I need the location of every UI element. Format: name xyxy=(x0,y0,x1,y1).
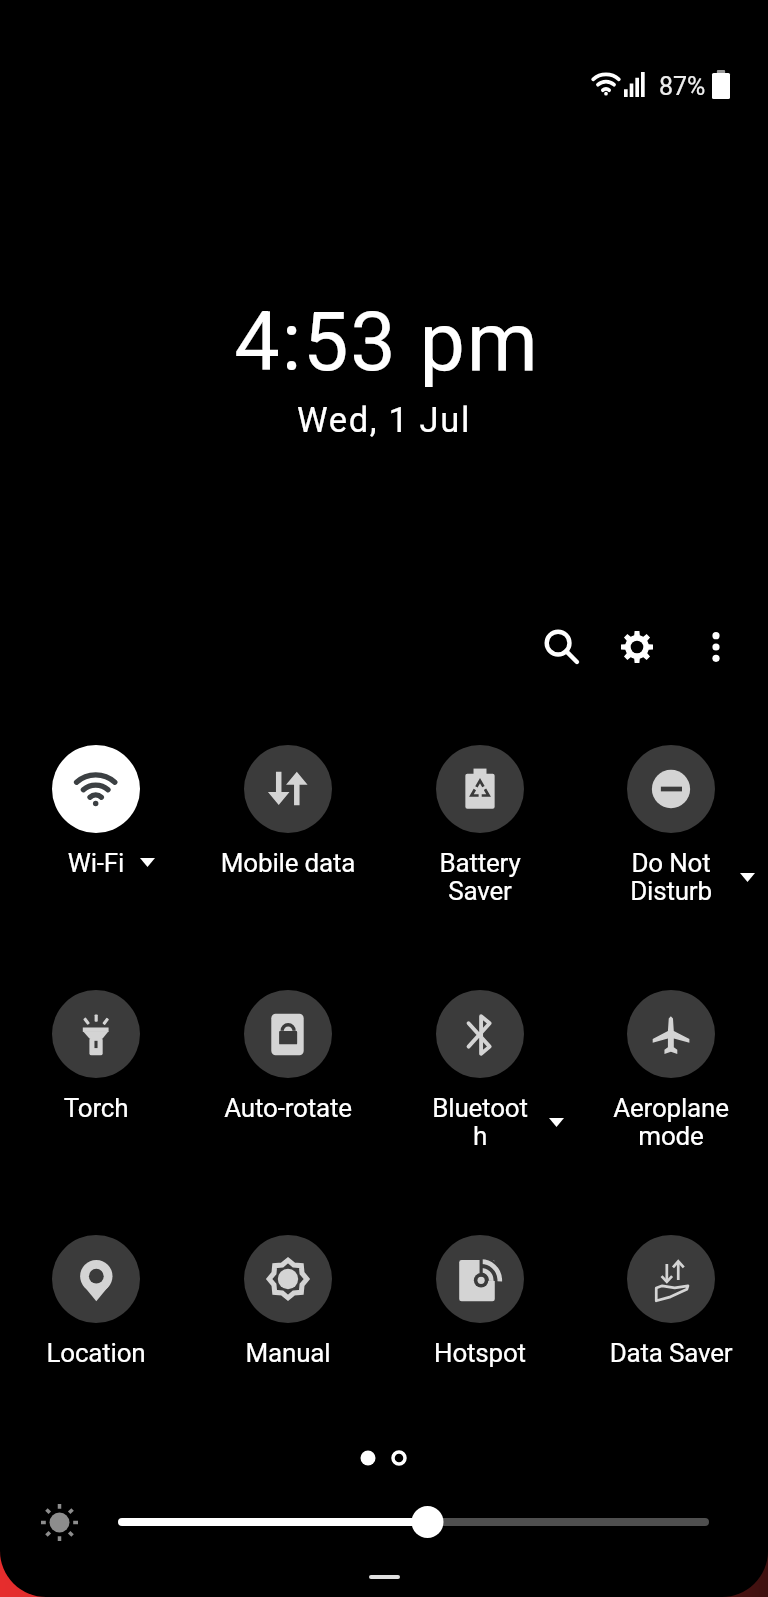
staticText: Data Saver xyxy=(575,1338,767,1368)
button[interactable]: Mobile data xyxy=(192,727,384,895)
button[interactable]: Auto-rotate xyxy=(192,972,384,1140)
button[interactable]: Battery Saver xyxy=(384,727,576,895)
staticText: Manual xyxy=(192,1338,384,1368)
staticText: Torch xyxy=(0,1093,192,1123)
button[interactable]: Do Not Disturb xyxy=(575,727,767,895)
staticText: Aeroplane mode xyxy=(575,1093,767,1152)
button[interactable]: More options xyxy=(681,612,751,682)
button[interactable]: Brightness xyxy=(100,1498,728,1546)
staticText: Wed, 1 Jul xyxy=(0,400,768,440)
staticText: Wi-Fi xyxy=(0,848,192,878)
staticText: Mobile data xyxy=(192,848,384,878)
staticText: 87% xyxy=(659,72,706,101)
staticText: Do Not Disturb xyxy=(575,848,767,907)
button[interactable]: Page 2 xyxy=(379,1438,419,1478)
button[interactable]: Aeroplane mode xyxy=(575,972,767,1140)
staticText: 4:53 pm xyxy=(3,295,768,390)
staticText: Location xyxy=(0,1338,192,1368)
button[interactable]: Location xyxy=(0,1217,192,1385)
button[interactable]: Search xyxy=(527,612,597,682)
button[interactable]: Torch xyxy=(0,972,192,1140)
button[interactable]: Data Saver xyxy=(575,1217,767,1385)
staticText: Auto-rotate xyxy=(192,1093,384,1123)
button[interactable]: Wi-Fi xyxy=(0,727,192,895)
button[interactable]: Hotspot xyxy=(384,1217,576,1385)
staticText: Bluetoot h xyxy=(384,1093,576,1152)
button[interactable]: Page 1 xyxy=(348,1438,388,1478)
button[interactable]: Manual xyxy=(192,1217,384,1385)
staticText: Battery Saver xyxy=(384,848,576,907)
button[interactable]: Bluetooth xyxy=(384,972,576,1140)
button[interactable]: Settings xyxy=(602,612,672,682)
staticText: Hotspot xyxy=(384,1338,576,1368)
